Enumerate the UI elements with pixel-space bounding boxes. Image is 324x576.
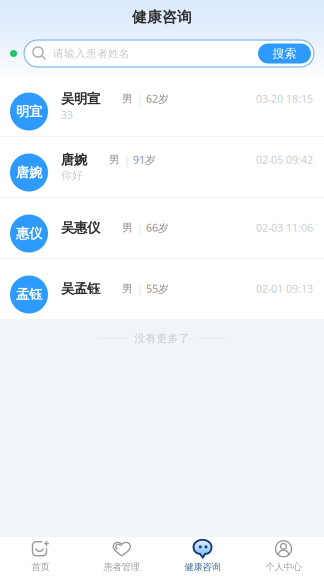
staticText: 91岁 — [133, 153, 156, 167]
staticText: 唐婉 — [16, 164, 42, 181]
staticText: 66岁 — [146, 221, 169, 235]
staticText: 你好 — [61, 169, 83, 182]
staticText: 吴惠仪 — [61, 219, 100, 236]
button[interactable]: 孟钰 — [0, 259, 324, 319]
staticText: 个人中心 — [265, 561, 301, 573]
staticText: | — [124, 153, 130, 167]
staticText: 唐婉 — [61, 151, 87, 168]
staticText: 健康咨询 — [132, 8, 192, 26]
staticText: 55岁 — [146, 282, 169, 296]
button[interactable]: 明宜 — [0, 76, 324, 136]
staticText: 男 — [122, 221, 133, 234]
staticText: 孟钰 — [16, 286, 42, 303]
staticText: 62岁 — [146, 92, 169, 106]
button[interactable]: 搜索 — [258, 43, 311, 63]
staticText: | — [137, 92, 143, 106]
button[interactable]: 唐婉 — [0, 137, 324, 197]
staticText: 搜索 — [272, 46, 296, 61]
staticText: 吴明宣 — [61, 90, 100, 107]
staticText: 33 — [61, 108, 73, 122]
staticText: 惠仪 — [16, 225, 42, 242]
staticText: 男 — [122, 282, 133, 295]
staticText: 02-03 11:06 — [256, 221, 313, 235]
staticText: 首页 — [31, 561, 49, 573]
staticText: | — [137, 282, 143, 296]
staticText: 请输入患者姓名 — [53, 47, 130, 60]
staticText: 03-20 18:15 — [256, 92, 313, 106]
button[interactable]: 患者管理 — [81, 534, 162, 576]
staticText: 患者管理 — [103, 561, 139, 573]
staticText: | — [137, 221, 143, 235]
button[interactable]: 个人中心 — [243, 534, 324, 576]
button[interactable]: 惠仪 — [0, 198, 324, 258]
staticText: 男 — [122, 92, 133, 105]
button[interactable]: 首页 — [0, 534, 81, 576]
staticText: 02-01 09:13 — [256, 282, 313, 296]
staticText: 没有更多了 — [134, 332, 189, 345]
staticText: 男 — [109, 153, 120, 166]
staticText: 吴孟钰 — [61, 280, 100, 297]
staticText: 健康咨询 — [184, 561, 220, 573]
button[interactable]: 健康咨询 — [162, 534, 243, 576]
staticText: 明宜 — [16, 103, 42, 120]
staticText: 02-05 09:42 — [256, 153, 313, 167]
